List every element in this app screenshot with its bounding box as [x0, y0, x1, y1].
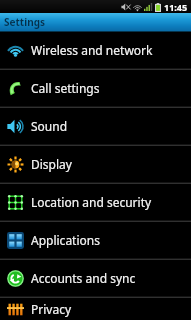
button[interactable]: Privacy: [0, 298, 191, 320]
button[interactable]: Wireless and network: [0, 32, 191, 68]
staticText: Settings: [4, 15, 45, 29]
staticText: Location and security: [31, 194, 152, 210]
button[interactable]: Location and security: [0, 184, 191, 220]
staticText: 11:45: [164, 1, 188, 13]
button[interactable]: Display: [0, 146, 191, 182]
staticText: Applications: [31, 232, 100, 248]
button[interactable]: Applications: [0, 222, 191, 258]
staticText: Privacy: [31, 301, 72, 317]
staticText: Accounts and sync: [31, 270, 136, 286]
button[interactable]: Sound: [0, 108, 191, 144]
staticText: Call settings: [31, 80, 100, 96]
staticText: Display: [31, 156, 72, 172]
staticText: Sound: [31, 118, 68, 134]
button[interactable]: Accounts and sync: [0, 260, 191, 296]
button[interactable]: Call settings: [0, 70, 191, 106]
staticText: Wireless and network: [31, 42, 153, 58]
